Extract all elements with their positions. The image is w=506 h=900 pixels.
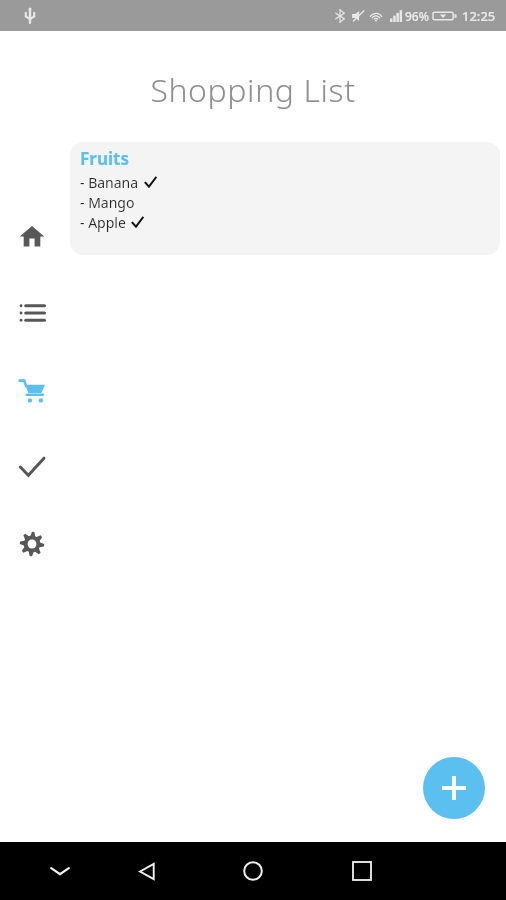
staticText: 96%	[405, 8, 429, 24]
button[interactable]: - Banana	[80, 172, 156, 192]
button[interactable]: Lists	[8, 289, 56, 337]
staticText: - Mango	[80, 193, 135, 212]
button[interactable]: - Apple	[80, 212, 143, 232]
button[interactable]: Hide	[20, 842, 100, 900]
staticText: - Apple	[80, 213, 126, 232]
staticText: - Banana	[80, 173, 139, 192]
button[interactable]: Fruits	[70, 142, 500, 255]
staticText: Fruits	[80, 147, 129, 170]
button[interactable]: Shopping cart	[8, 366, 56, 414]
button[interactable]: - Mango	[80, 192, 135, 212]
button[interactable]: Home	[211, 842, 295, 900]
button[interactable]: Back	[104, 842, 188, 900]
staticText: 12:25	[462, 7, 496, 25]
button[interactable]: Completed	[8, 443, 56, 491]
button[interactable]: Recent apps	[320, 842, 404, 900]
button[interactable]: Home	[8, 212, 56, 260]
button[interactable]: Settings	[8, 520, 56, 568]
staticText: Shopping List	[0, 68, 506, 112]
button[interactable]: Add list	[423, 757, 485, 819]
